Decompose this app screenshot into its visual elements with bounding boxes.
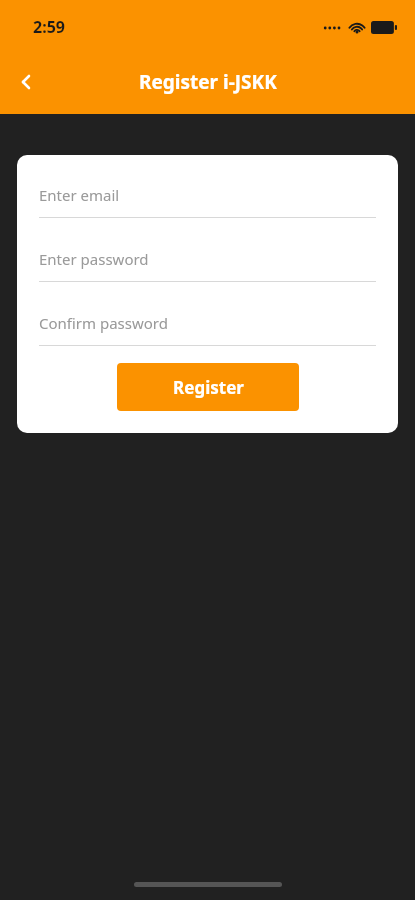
staticText: Confirm password bbox=[39, 313, 168, 333]
staticText: Register i-JSKK bbox=[139, 69, 277, 95]
staticText: Enter email bbox=[39, 185, 120, 205]
staticText: Enter password bbox=[39, 249, 149, 269]
button[interactable]: Confirm password bbox=[39, 313, 376, 346]
staticText: 2:59 bbox=[33, 16, 65, 38]
button[interactable]: Register bbox=[117, 363, 299, 411]
button[interactable]: Enter password bbox=[39, 249, 376, 282]
staticText: Register bbox=[173, 376, 244, 399]
button[interactable]: Back bbox=[6, 61, 48, 103]
button[interactable]: Enter email bbox=[39, 185, 376, 218]
